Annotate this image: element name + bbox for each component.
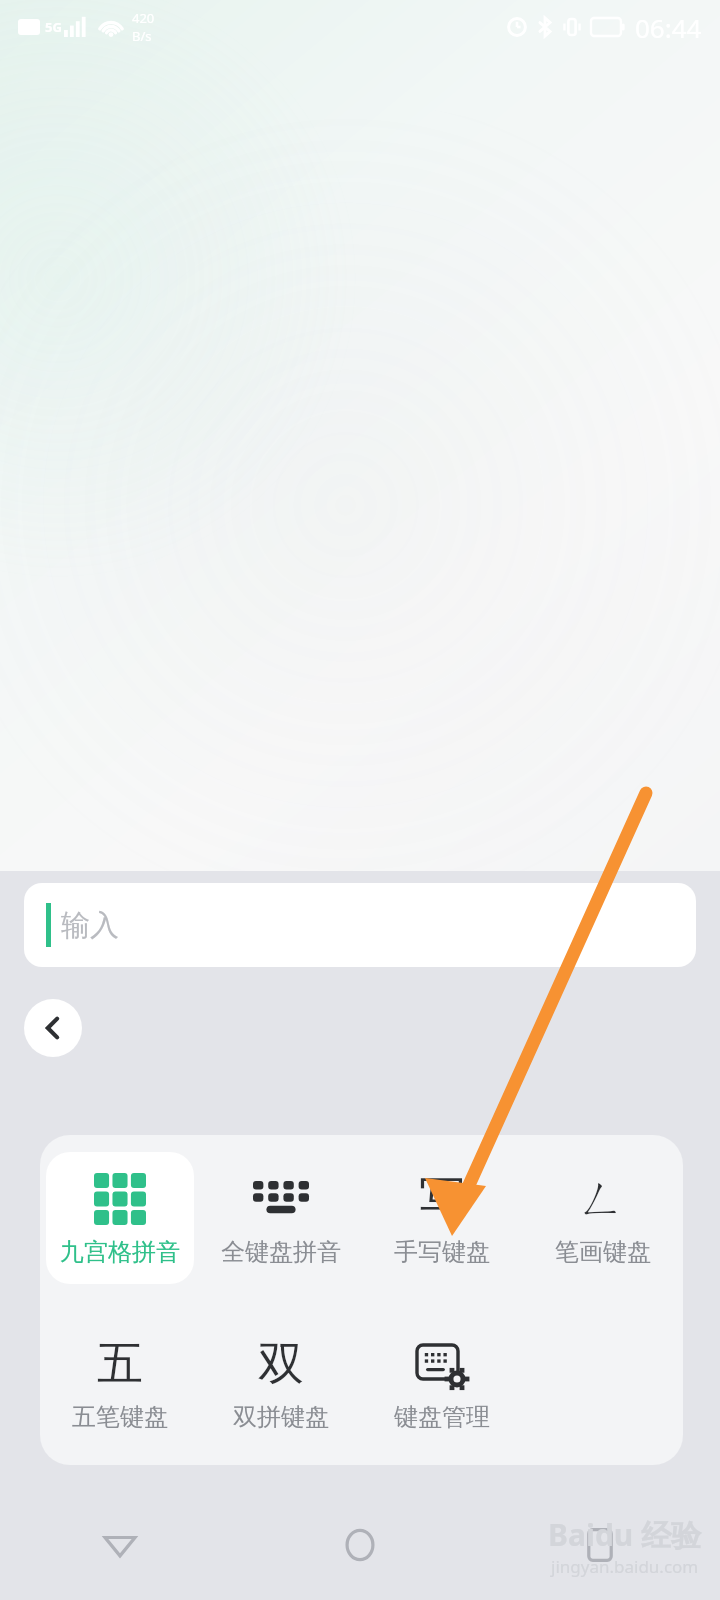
staticText: 笔画键盘 [555, 1237, 651, 1267]
staticText: 五 [97, 1335, 143, 1393]
staticText: ㄥ [579, 1170, 626, 1228]
button[interactable]: Recents [480, 1490, 720, 1600]
button[interactable]: ㄥ [528, 1152, 677, 1284]
button[interactable]: Home [240, 1490, 480, 1600]
staticText: 全键盘拼音 [221, 1237, 341, 1267]
button[interactable]: 九宫格拼音 [46, 1152, 194, 1284]
staticText: 手写键盘 [394, 1237, 490, 1267]
button[interactable]: 写 [367, 1152, 516, 1284]
staticText: 键盘管理 [394, 1402, 490, 1432]
button[interactable]: 键盘管理 [367, 1317, 516, 1449]
button[interactable]: 输入 [24, 883, 696, 967]
staticText: 输入 [61, 907, 119, 944]
staticText: 五笔键盘 [72, 1402, 168, 1432]
staticText: 写 [419, 1170, 465, 1228]
staticText: 双拼键盘 [233, 1402, 329, 1432]
button[interactable]: 全键盘拼音 [206, 1152, 355, 1284]
button[interactable]: Back [0, 1490, 240, 1600]
staticText: 九宫格拼音 [60, 1237, 180, 1267]
button[interactable]: Back [24, 999, 82, 1057]
staticText: Baidu 经验 [548, 1514, 702, 1555]
staticText: 06:44 [635, 10, 702, 45]
staticText: jingyan.baidu.com [551, 1555, 699, 1578]
button[interactable]: 双 [206, 1317, 355, 1449]
staticText: 420 [132, 9, 155, 27]
staticText: 5G [45, 18, 62, 36]
staticText: B/s [132, 27, 152, 45]
staticText: 双 [258, 1335, 304, 1393]
button[interactable]: 五 [46, 1317, 194, 1449]
